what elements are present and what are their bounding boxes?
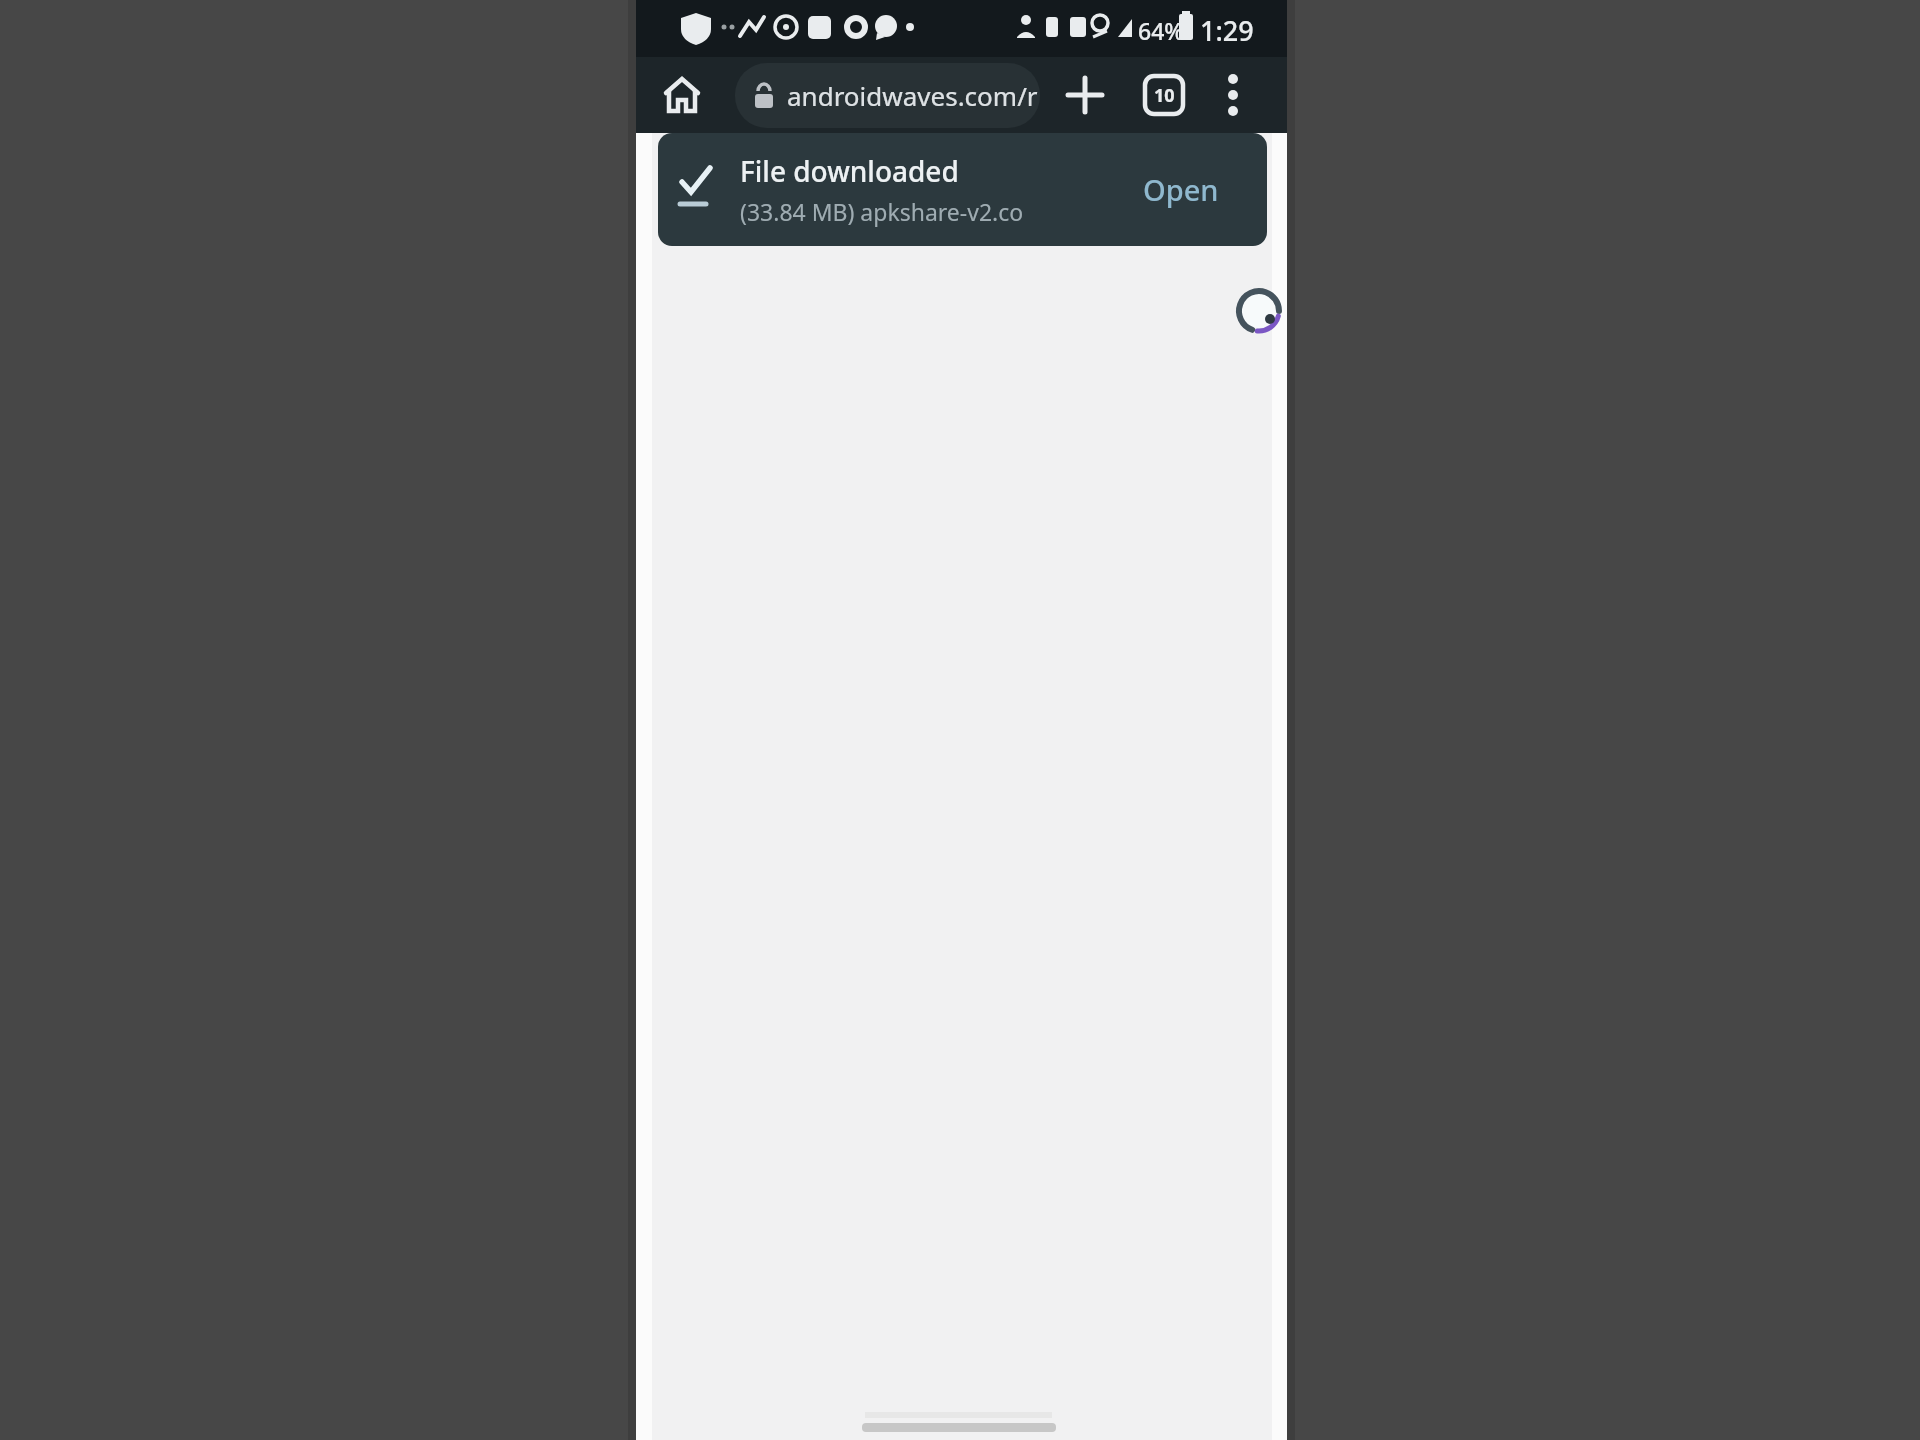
button[interactable]: androidwaves.com/r	[735, 63, 1040, 128]
staticText: File downloaded	[740, 152, 959, 190]
staticText: Open	[1143, 170, 1219, 209]
staticText: 1:29	[1200, 12, 1254, 49]
button[interactable]: File downloaded	[658, 133, 1267, 246]
button[interactable]	[1063, 73, 1107, 117]
staticText: (33.84 MB) apkshare-v2.co	[740, 196, 1024, 227]
button[interactable]: 10	[1142, 73, 1186, 117]
staticText: 10	[1154, 83, 1175, 108]
staticText: androidwaves.com/r	[787, 78, 1038, 113]
button[interactable]: Open	[1131, 158, 1231, 221]
staticText: 64%	[1138, 15, 1184, 46]
button[interactable]	[1211, 73, 1255, 117]
